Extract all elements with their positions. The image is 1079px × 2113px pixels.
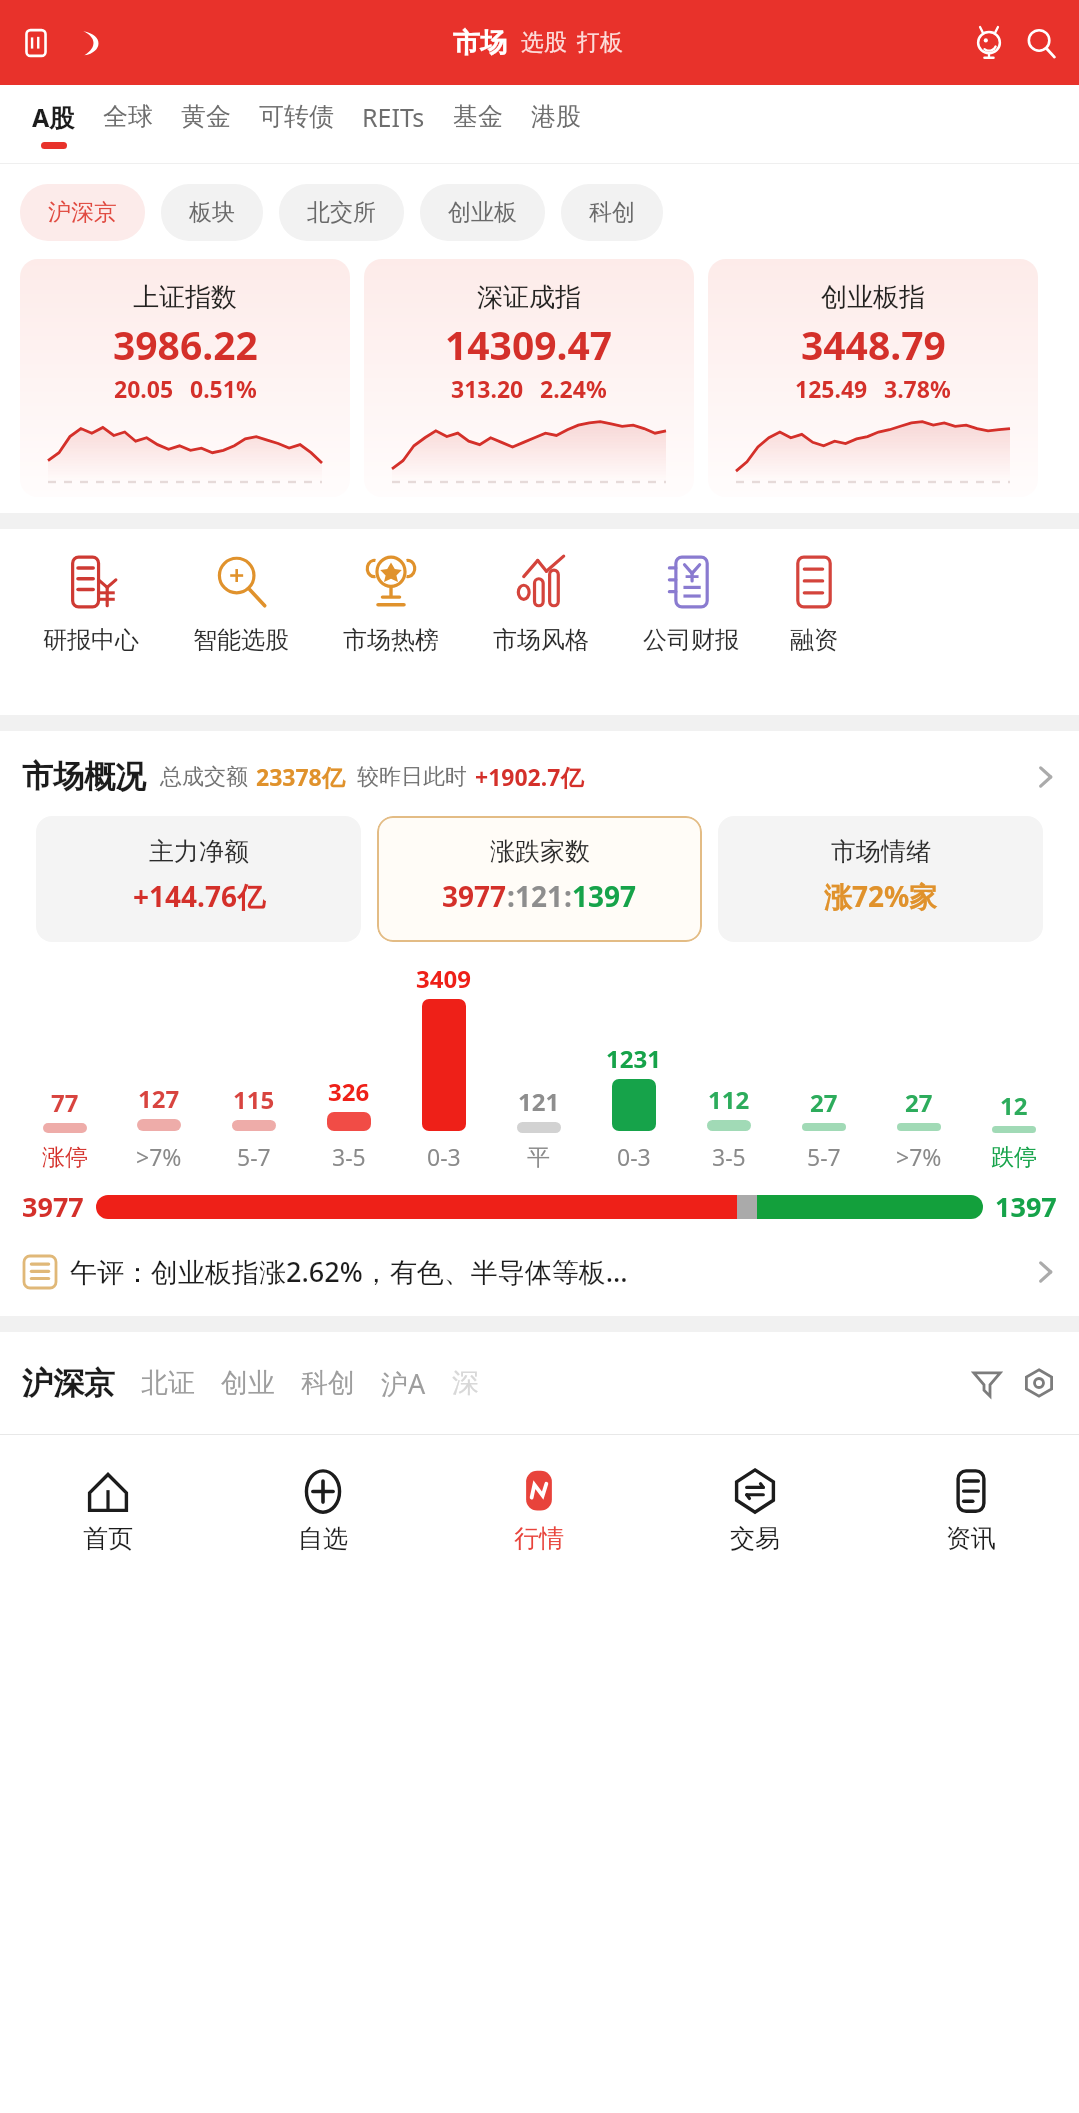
button[interactable]: A股 — [18, 100, 89, 149]
staticText: 上证指数 — [133, 281, 237, 314]
staticText: 黄金 — [181, 101, 231, 132]
staticText: 5-7 — [237, 1141, 271, 1172]
button[interactable]: 智能选股 — [166, 555, 316, 655]
staticText: 3448.79 — [801, 318, 946, 371]
button[interactable]: 板块 — [161, 184, 263, 241]
staticText: 77 — [51, 1086, 79, 1119]
staticText: 涨停 — [42, 1143, 88, 1172]
staticText: 3977 — [442, 877, 507, 915]
staticText: 涨跌家数 — [490, 836, 590, 867]
staticText: 1231 — [606, 1042, 661, 1075]
staticText: 较昨日此时 — [357, 763, 467, 791]
staticText: 深证成指 — [477, 281, 581, 314]
staticText: 融资 — [790, 625, 838, 655]
staticText: 0-3 — [617, 1141, 651, 1172]
staticText: 12 — [1000, 1089, 1028, 1122]
button[interactable]: Filter — [963, 1359, 1011, 1407]
button[interactable]: 创业板指 — [708, 259, 1038, 497]
button[interactable]: 全球 — [89, 101, 167, 147]
staticText: 121 — [515, 877, 564, 915]
staticText: 3.78% — [884, 373, 951, 404]
staticText: 交易 — [730, 1523, 780, 1554]
button[interactable]: Settings — [1015, 1359, 1063, 1407]
staticText: +1902.7亿 — [475, 761, 584, 792]
staticText: 3977 — [22, 1188, 84, 1225]
staticText: A股 — [32, 100, 75, 134]
staticText: 27 — [810, 1086, 838, 1119]
button[interactable]: 创业 — [221, 1366, 275, 1400]
button[interactable]: 黄金 — [167, 101, 245, 147]
button[interactable]: Night mode — [68, 21, 112, 65]
button[interactable]: 首页 — [0, 1435, 215, 1587]
staticText: 3409 — [416, 962, 471, 995]
staticText: +144.76亿 — [133, 877, 265, 915]
staticText: 市场热榜 — [343, 625, 439, 655]
staticText: REITs — [362, 100, 425, 134]
staticText: 智能选股 — [193, 625, 289, 655]
staticText: 112 — [708, 1083, 750, 1116]
staticText: 0-3 — [427, 1141, 461, 1172]
staticText: >7% — [896, 1141, 942, 1172]
staticText: 2.24% — [540, 373, 607, 404]
button[interactable]: 港股 — [517, 101, 595, 147]
staticText: 市场风格 — [493, 625, 589, 655]
staticText: 午评：创业板指涨2.62%，有色、半导体等板… — [70, 1253, 1033, 1290]
button[interactable]: 沪A — [381, 1365, 426, 1402]
staticText: 3-5 — [332, 1141, 366, 1172]
button[interactable]: 市场情绪 — [718, 816, 1043, 942]
button[interactable]: Screens — [14, 21, 58, 65]
staticText: 创业板指 — [821, 281, 925, 314]
button[interactable]: Alerts — [965, 19, 1013, 67]
staticText: 科创 — [589, 198, 635, 227]
button[interactable]: 科创 — [561, 184, 663, 241]
staticText: 港股 — [531, 101, 581, 132]
staticText: 313.20 — [451, 373, 524, 404]
staticText: 行情 — [514, 1523, 564, 1554]
staticText: 首页 — [83, 1523, 133, 1554]
button[interactable]: 主力净额 — [36, 816, 361, 942]
button[interactable]: 北证 — [141, 1366, 195, 1400]
staticText: 板块 — [189, 198, 235, 227]
staticText: 公司财报 — [643, 625, 739, 655]
button[interactable]: 选股 — [521, 28, 567, 57]
button[interactable]: 涨跌家数 — [377, 816, 702, 942]
staticText: 115 — [233, 1083, 275, 1116]
staticText: 创业板 — [448, 198, 517, 227]
staticText: 127 — [138, 1082, 180, 1115]
staticText: 全球 — [103, 101, 153, 132]
staticText: 3986.22 — [113, 318, 258, 371]
button[interactable]: 深证成指 — [364, 259, 694, 497]
staticText: 市场概况 — [22, 757, 146, 796]
staticText: 研报中心 — [43, 625, 139, 655]
button[interactable]: 研报中心 — [16, 555, 166, 655]
button[interactable]: 打板 — [577, 28, 623, 57]
button[interactable]: 沪深京 — [22, 1364, 115, 1403]
button[interactable]: 交易 — [647, 1435, 863, 1587]
staticText: 125.49 — [795, 373, 868, 404]
staticText: 23378亿 — [256, 761, 345, 792]
button[interactable]: 创业板 — [420, 184, 545, 241]
button[interactable]: 自选 — [215, 1435, 431, 1587]
staticText: : — [507, 877, 515, 915]
button[interactable]: 科创 — [301, 1366, 355, 1400]
button[interactable]: 沪深京 — [20, 184, 145, 241]
staticText: 121 — [518, 1085, 560, 1118]
button[interactable]: REITs — [348, 100, 439, 149]
button[interactable]: Search — [1017, 19, 1065, 67]
button[interactable]: 融资 — [766, 555, 862, 655]
button[interactable]: 行情 — [431, 1435, 647, 1587]
button[interactable]: 北交所 — [279, 184, 404, 241]
button[interactable]: 公司财报 — [616, 555, 766, 655]
button[interactable]: 午评：创业板指涨2.62%，有色、半导体等板… — [22, 1253, 1057, 1290]
button[interactable]: 市场热榜 — [316, 555, 466, 655]
staticText: 跌停 — [991, 1143, 1037, 1172]
staticText: 1397 — [995, 1188, 1057, 1225]
staticText: 基金 — [453, 101, 503, 132]
button[interactable]: 市场概况 — [22, 757, 1065, 796]
button[interactable]: 上证指数 — [20, 259, 350, 497]
button[interactable]: 资讯 — [863, 1435, 1079, 1587]
button[interactable]: 基金 — [439, 101, 517, 147]
staticText: 自选 — [298, 1523, 348, 1554]
button[interactable]: 可转债 — [245, 101, 348, 147]
button[interactable]: 市场风格 — [466, 555, 616, 655]
